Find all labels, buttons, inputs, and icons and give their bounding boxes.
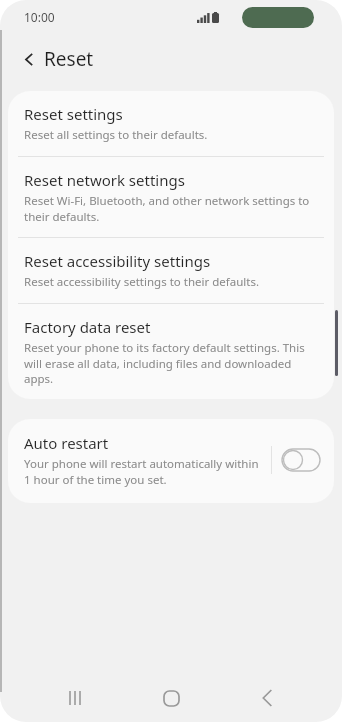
button[interactable]: Auto restart bbox=[8, 419, 334, 503]
button[interactable]: Reset network settings bbox=[8, 157, 334, 237]
staticText: Reset your phone to its factory default … bbox=[24, 340, 316, 386]
button[interactable]: Reset settings bbox=[8, 91, 334, 156]
button[interactable]: Auto restart toggle bbox=[282, 449, 320, 471]
staticText: Auto restart bbox=[24, 433, 109, 453]
button[interactable]: Back bbox=[12, 42, 46, 76]
staticText: Reset Wi-Fi, Bluetooth, and other networ… bbox=[24, 193, 316, 224]
staticText: Reset network settings bbox=[24, 170, 185, 190]
staticText: Reset accessibility settings to their de… bbox=[24, 274, 259, 290]
staticText: Reset all settings to their defaults. bbox=[24, 127, 208, 143]
staticText: Reset bbox=[44, 46, 94, 72]
staticText: Factory data reset bbox=[24, 317, 151, 337]
button[interactable]: Home bbox=[151, 678, 191, 718]
button[interactable]: Reset accessibility settings bbox=[8, 238, 334, 303]
button[interactable]: Recent apps bbox=[56, 679, 94, 717]
staticText: 10:00 bbox=[24, 9, 55, 25]
staticText: Your phone will restart automatically wi… bbox=[24, 456, 263, 487]
button[interactable]: Factory data reset bbox=[8, 304, 334, 399]
staticText: Reset accessibility settings bbox=[24, 251, 211, 271]
staticText: Reset settings bbox=[24, 104, 123, 124]
button[interactable]: Back bbox=[248, 679, 286, 717]
